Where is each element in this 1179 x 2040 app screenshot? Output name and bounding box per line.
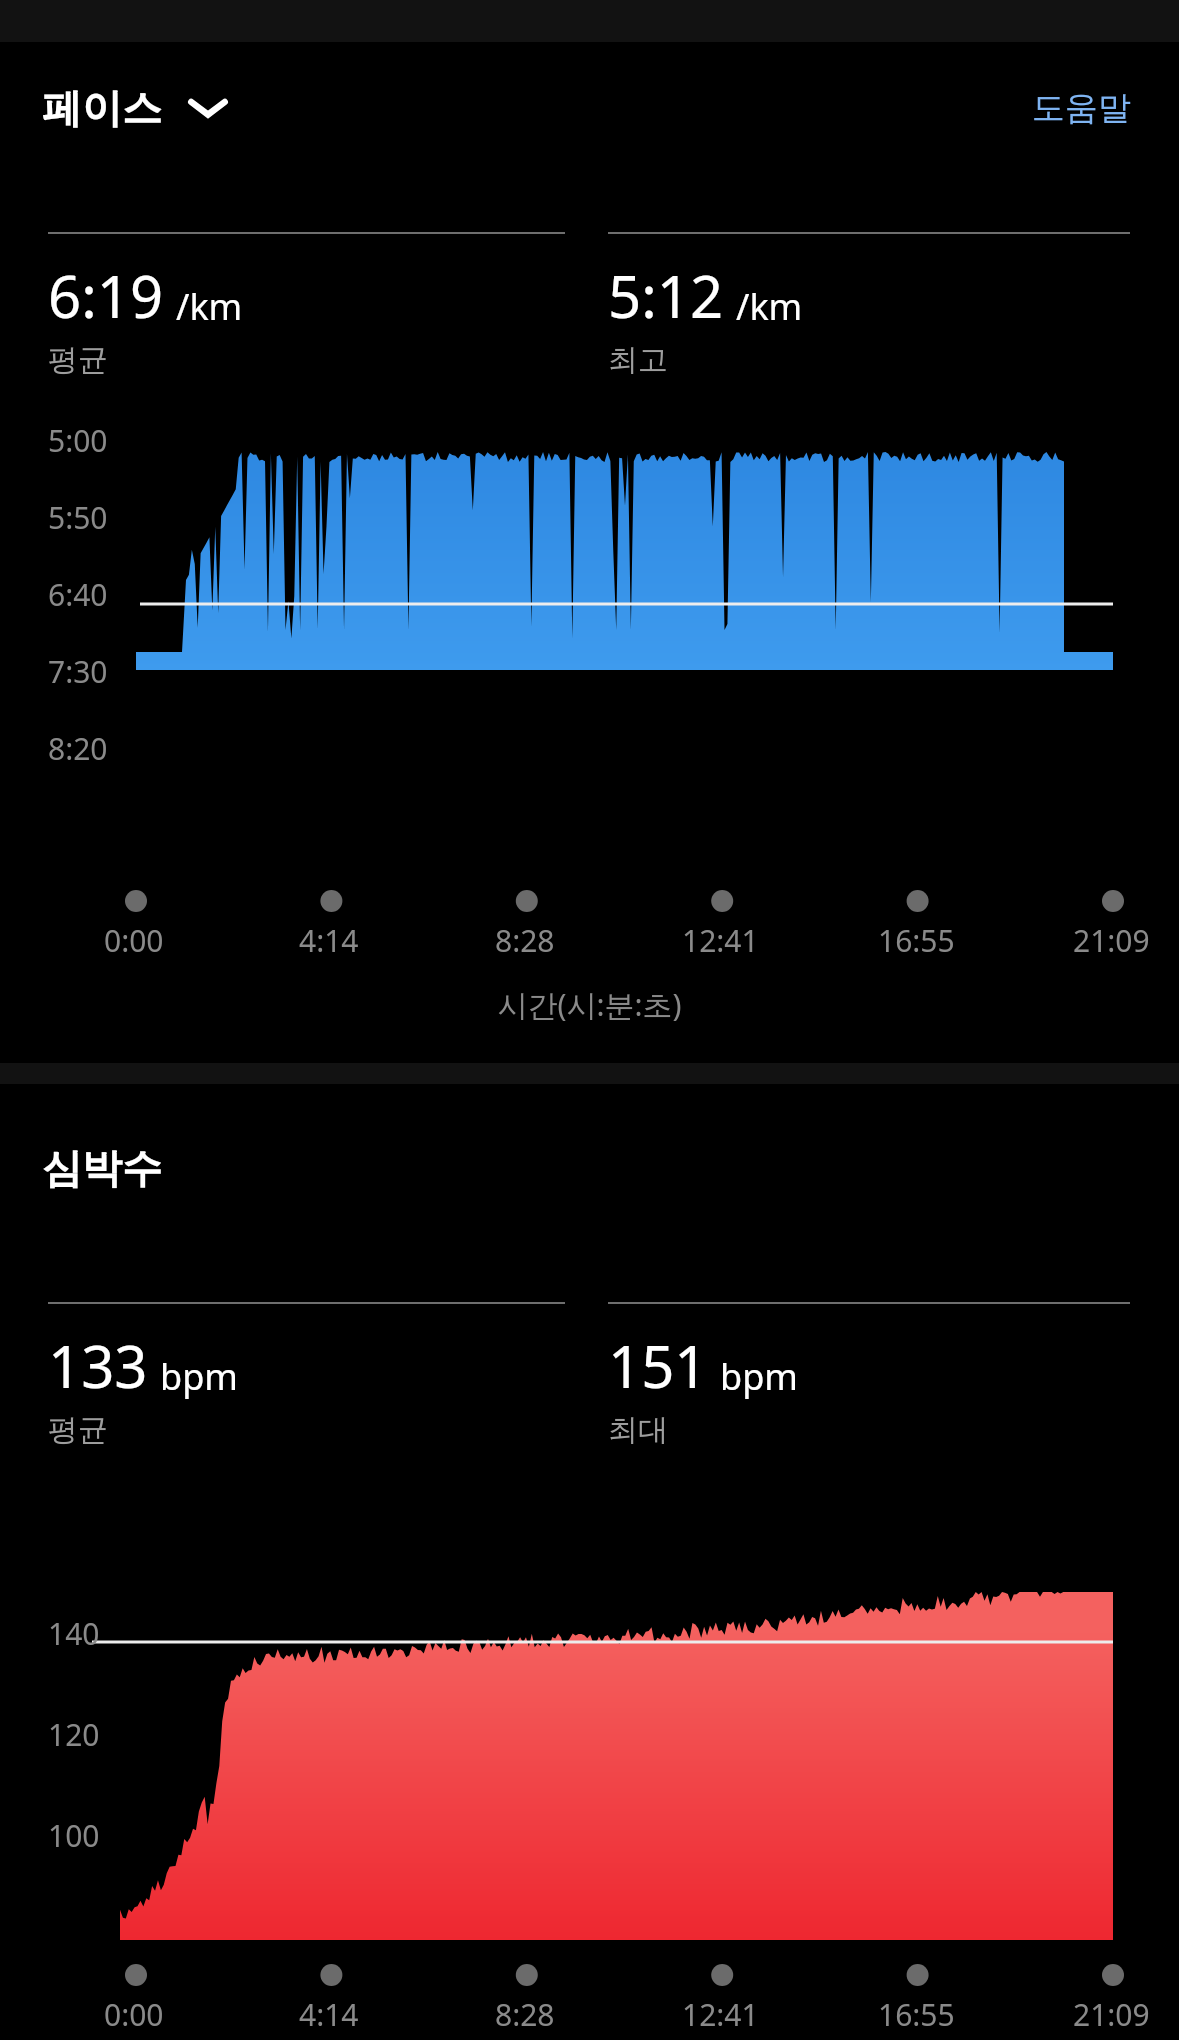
staticText: 최대 [608, 1411, 668, 1449]
staticText: 5:12 [608, 256, 724, 335]
button[interactable]: 페이스 [34, 77, 238, 139]
staticText: 100 [48, 1815, 100, 1856]
staticText: 4:14 [299, 920, 359, 961]
staticText: 0:00 [104, 1994, 164, 2035]
button[interactable]: 151 [608, 1302, 1130, 1449]
button[interactable]: 5:12 [608, 232, 1130, 379]
button[interactable]: 심박수 [34, 1137, 170, 1199]
staticText: 12:41 [682, 1994, 759, 2035]
staticText: 8:20 [48, 728, 108, 769]
staticText: 140 [48, 1613, 100, 1654]
staticText: 133 [48, 1326, 148, 1405]
staticText: 도움말 [1032, 87, 1131, 129]
staticText: 6:40 [48, 574, 108, 615]
staticText: 4:14 [299, 1994, 359, 2035]
staticText: 시간(시:분:초) [0, 984, 1179, 1025]
button[interactable]: 6:19 [48, 232, 565, 379]
other: Change metric [186, 93, 230, 123]
staticText: bpm [160, 1352, 238, 1401]
staticText: 평균 [48, 1411, 108, 1449]
staticText: 120 [48, 1714, 100, 1755]
staticText: /km [176, 282, 243, 331]
staticText: 21:09 [1073, 1994, 1150, 2035]
button[interactable]: 도움말 [1010, 77, 1153, 139]
staticText: 0:00 [104, 920, 164, 961]
staticText: 16:55 [878, 1994, 955, 2035]
button[interactable]: 133 [48, 1302, 565, 1449]
staticText: 5:50 [48, 497, 108, 538]
staticText: 12:41 [682, 920, 759, 961]
staticText: 6:19 [48, 256, 164, 335]
staticText: /km [736, 282, 803, 331]
staticText: 21:09 [1073, 920, 1150, 961]
staticText: 16:55 [878, 920, 955, 961]
staticText: 151 [608, 1326, 708, 1405]
staticText: 5:00 [48, 420, 108, 461]
staticText: 심박수 [42, 1143, 162, 1193]
staticText: bpm [720, 1352, 798, 1401]
staticText: 8:28 [495, 1994, 555, 2035]
staticText: 7:30 [48, 651, 108, 692]
staticText: 평균 [48, 341, 108, 379]
staticText: 8:28 [495, 920, 555, 961]
staticText: 페이스 [42, 83, 162, 133]
staticText: 최고 [608, 341, 668, 379]
